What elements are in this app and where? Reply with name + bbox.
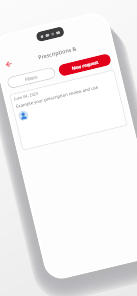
staticText: Filters bbox=[24, 73, 38, 82]
button[interactable]: New request bbox=[58, 53, 112, 77]
staticText: New request bbox=[71, 59, 100, 71]
button[interactable]: June 04, 2023 bbox=[9, 69, 128, 151]
button[interactable]: Filters bbox=[6, 66, 56, 89]
staticText: Example your prescription review and use bbox=[15, 83, 99, 109]
staticText: June 04, 2023 bbox=[14, 91, 39, 101]
staticText: Prescriptions & Recommendations bbox=[14, 39, 100, 66]
button[interactable]: Back bbox=[1, 56, 16, 72]
